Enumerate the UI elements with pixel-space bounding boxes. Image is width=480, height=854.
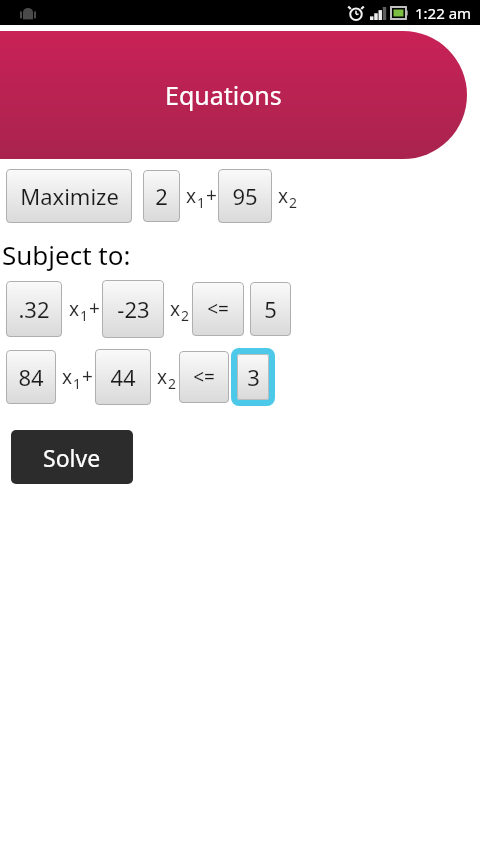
- staticText: 44: [110, 362, 136, 392]
- staticText: +: [82, 363, 93, 389]
- staticText: <=: [193, 364, 215, 390]
- button[interactable]: -23: [102, 280, 164, 338]
- staticText: x: [62, 364, 73, 390]
- staticText: x: [186, 183, 197, 209]
- button[interactable]: 95: [218, 169, 272, 223]
- staticText: x: [278, 183, 289, 209]
- staticText: 95: [232, 181, 258, 211]
- button[interactable]: .32: [6, 281, 62, 337]
- staticText: .32: [18, 294, 50, 324]
- button[interactable]: Maximize: [6, 169, 132, 223]
- staticText: +: [206, 182, 217, 208]
- staticText: 1: [197, 193, 206, 212]
- button[interactable]: <=: [179, 351, 229, 403]
- staticText: 5: [264, 294, 277, 324]
- staticText: 1: [80, 306, 89, 325]
- staticText: 84: [18, 362, 44, 392]
- button[interactable]: <=: [192, 282, 244, 336]
- button[interactable]: 2: [143, 170, 180, 222]
- staticText: Subject to:: [2, 237, 131, 272]
- staticText: 2: [155, 181, 168, 211]
- button[interactable]: 5: [250, 282, 291, 336]
- button[interactable]: Solve: [11, 430, 133, 484]
- staticText: 1:22 am: [415, 3, 472, 23]
- staticText: Maximize: [20, 181, 119, 211]
- staticText: +: [89, 295, 100, 321]
- staticText: x: [69, 296, 80, 322]
- staticText: Solve: [43, 442, 101, 473]
- staticText: 3: [247, 362, 260, 392]
- staticText: Equations: [165, 78, 282, 112]
- button[interactable]: Equations: [0, 31, 467, 159]
- staticText: -23: [117, 294, 150, 324]
- staticText: 2: [289, 193, 298, 212]
- button[interactable]: 44: [95, 349, 151, 405]
- staticText: <=: [207, 296, 229, 322]
- button[interactable]: 3: [231, 348, 275, 406]
- staticText: 1: [73, 374, 82, 393]
- staticText: x: [170, 296, 181, 322]
- staticText: 2: [181, 306, 190, 325]
- staticText: 2: [168, 374, 177, 393]
- staticText: x: [157, 364, 168, 390]
- button[interactable]: 84: [6, 350, 56, 404]
